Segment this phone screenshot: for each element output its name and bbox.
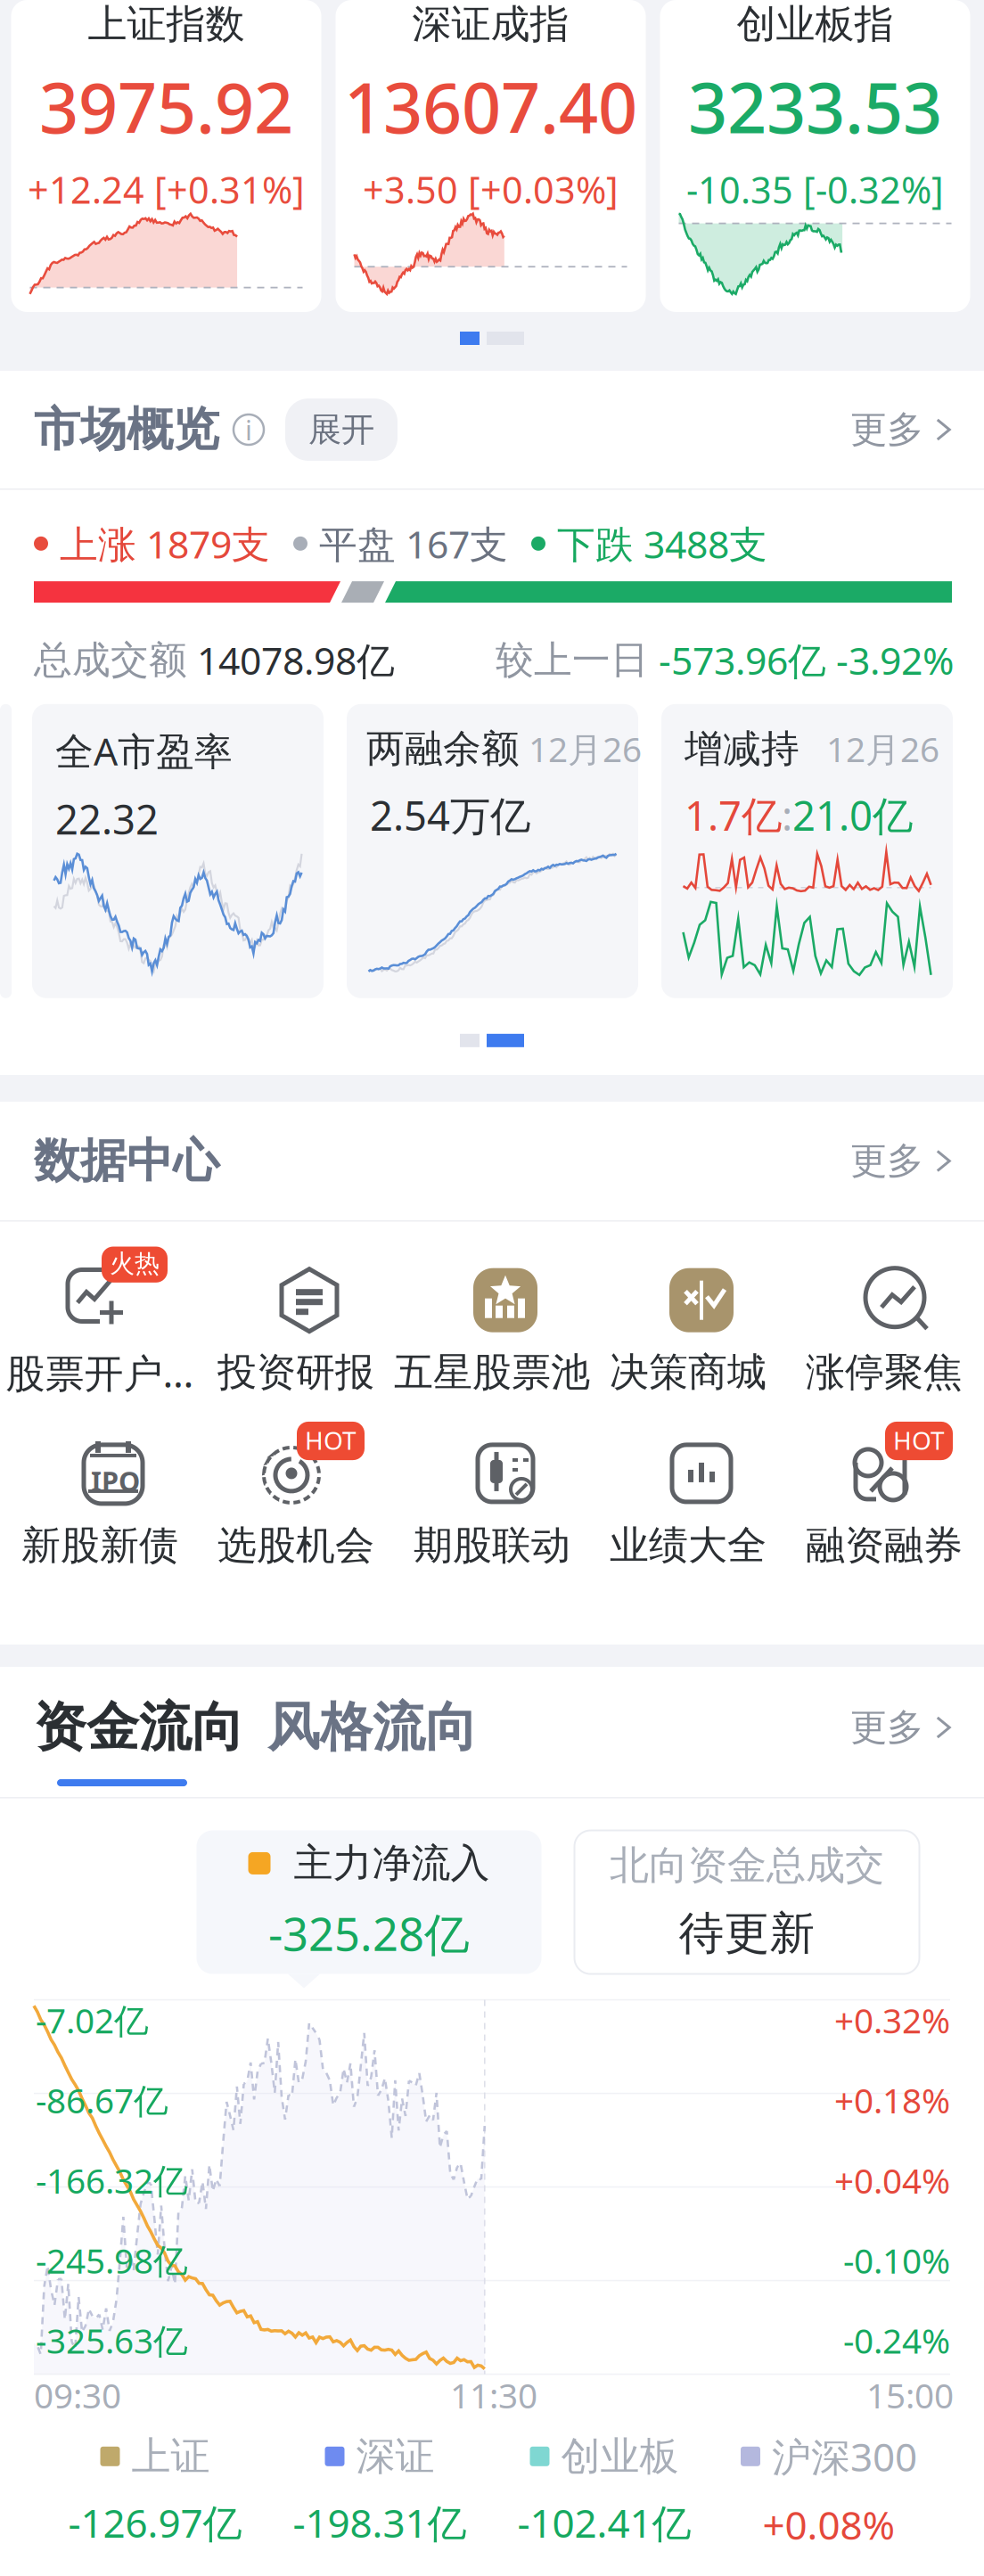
staticText: 期股联动 [414, 1521, 570, 1570]
staticText: 1.7亿 [685, 788, 782, 842]
staticText: 增减持 [685, 725, 799, 772]
button[interactable]: 全A市盈率 [32, 704, 324, 998]
staticText: 决策商城 [610, 1348, 767, 1396]
button[interactable]: HOT [198, 1416, 394, 1570]
staticText: 业绩大全 [610, 1521, 767, 1570]
staticText: 下跌 3488支 [545, 518, 767, 569]
button[interactable]: 更多 [850, 407, 954, 452]
button[interactable]: 上证指数 [11, 0, 321, 312]
staticText: 上涨 1879支 [48, 518, 270, 569]
staticText: -325.28亿 [268, 1903, 470, 1963]
staticText: HOT [893, 1423, 945, 1457]
staticText: 总成交额 [34, 637, 187, 683]
staticText: 北向资金总成交 [610, 1841, 884, 1890]
staticText: 市场概览 [34, 401, 219, 458]
staticText: 12月26 [799, 726, 939, 772]
button[interactable]: 北向资金总成交 [574, 1830, 919, 1974]
staticText: 3233.53 [688, 61, 942, 152]
staticText: -0.10% [843, 2237, 950, 2283]
staticText: 13607.40 [344, 61, 637, 152]
button[interactable]: 展开 [285, 399, 398, 461]
button[interactable]: 涨停聚焦 [786, 1243, 982, 1396]
staticText: -86.67亿 [36, 2077, 168, 2123]
staticText: 涨停聚焦 [806, 1348, 963, 1396]
button[interactable]: 创业板指 [660, 0, 970, 312]
button[interactable]: 决策商城 [590, 1243, 786, 1396]
staticText: 创业板 [549, 2432, 679, 2480]
staticText: +0.32% [834, 1997, 950, 2043]
staticText: -0.24% [843, 2317, 950, 2363]
staticText: 数据中心 [34, 1133, 219, 1190]
staticText: -126.97亿 [68, 2496, 242, 2549]
staticText: 15:00 [866, 2372, 954, 2418]
button[interactable]: 两融余额 [347, 704, 638, 998]
staticText: 五星股票池 [394, 1348, 590, 1396]
staticText: 更多 [850, 407, 923, 452]
staticText: 资金流向 [34, 1695, 244, 1760]
staticText: 平盘 167支 [307, 518, 508, 569]
staticText: 更多 [850, 1705, 923, 1750]
staticText: 11:30 [450, 2372, 537, 2418]
staticText: 更多 [850, 1138, 923, 1184]
staticText: 14078.98亿 [187, 635, 395, 685]
button[interactable]: 投资研报 [198, 1243, 394, 1396]
button[interactable]: 风格流向 [267, 1695, 478, 1760]
staticText: -102.41亿 [517, 2496, 691, 2549]
button[interactable]: 资金流向 [34, 1695, 244, 1760]
staticText: 上证指数 [88, 0, 245, 48]
staticText: 展开 [308, 409, 374, 450]
staticText: -7.02亿 [36, 1997, 149, 2043]
staticText: 22.32 [55, 792, 159, 846]
button[interactable]: 五星股票池 [394, 1243, 590, 1396]
staticText: 较上一日 [496, 637, 649, 683]
button[interactable]: 更多 [850, 1705, 954, 1750]
staticText: 待更新 [679, 1906, 815, 1961]
staticText: : [782, 788, 792, 842]
button[interactable]: 更多 [850, 1138, 954, 1184]
staticText: 创业板指 [737, 0, 894, 48]
staticText: +0.18% [834, 2077, 950, 2123]
staticText: IPO [91, 1463, 140, 1499]
staticText: -10.35 [-0.32%] [686, 165, 944, 214]
staticText: 2.54万亿 [370, 788, 530, 842]
staticText: HOT [305, 1423, 357, 1457]
button[interactable]: 沪深300 [717, 2430, 941, 2551]
staticText: i [245, 411, 252, 448]
staticText: 上证 [120, 2432, 210, 2480]
staticText: 深证 [344, 2432, 435, 2480]
staticText: 主力净流入 [271, 1839, 490, 1887]
staticText: 21.0亿 [792, 788, 913, 842]
staticText: 12月26 [520, 726, 642, 772]
staticText: -166.32亿 [36, 2157, 188, 2203]
staticText: 选股机会 [217, 1521, 374, 1570]
staticText: 股票开户… [6, 1346, 194, 1398]
staticText: 3975.92 [39, 61, 293, 152]
button[interactable]: 增减持 [661, 704, 953, 998]
staticText: 09:30 [34, 2372, 121, 2418]
staticText: +3.50 [+0.03%] [363, 165, 619, 214]
button[interactable]: 创业板 [492, 2432, 717, 2549]
staticText: 深证成指 [412, 0, 569, 48]
staticText: 全A市盈率 [55, 725, 233, 776]
staticText: 风格流向 [267, 1695, 478, 1760]
button[interactable]: 市场概览说明 [234, 414, 264, 445]
staticText: +0.08% [763, 2498, 895, 2551]
button[interactable]: 主力净流入 [197, 1830, 541, 1974]
staticText: +12.24 [+0.31%] [28, 165, 305, 214]
button[interactable]: 上证 [43, 2432, 267, 2549]
staticText: 新股新债 [21, 1521, 178, 1570]
staticText: -573.96亿 -3.92% [649, 635, 954, 685]
button[interactable]: 深证成指 [336, 0, 646, 312]
staticText: +0.04% [834, 2157, 950, 2203]
button[interactable]: 深证 [267, 2432, 492, 2549]
staticText: 两融余额 [366, 725, 520, 772]
staticText: 沪深300 [760, 2430, 917, 2482]
staticText: -245.98亿 [36, 2237, 188, 2283]
staticText: 投资研报 [217, 1348, 374, 1396]
button[interactable]: IPO [2, 1416, 198, 1570]
button[interactable]: 期股联动 [394, 1416, 590, 1570]
button[interactable]: 业绩大全 [590, 1416, 786, 1570]
button[interactable]: 火热 [2, 1241, 198, 1398]
button[interactable]: HOT [786, 1416, 982, 1570]
staticText: -325.63亿 [36, 2317, 188, 2363]
